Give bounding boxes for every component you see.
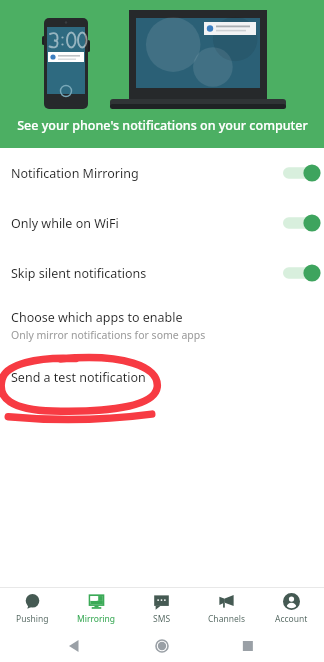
button[interactable]: Notification Mirroring — [0, 148, 324, 198]
button[interactable]: Send a test notification — [0, 354, 324, 400]
button[interactable]: SMS — [129, 588, 194, 630]
staticText: Choose which apps to enable — [11, 309, 183, 326]
staticText: Mirroring — [77, 613, 116, 625]
staticText: Send a test notification — [11, 369, 146, 386]
button[interactable]: Only while on WiFi — [0, 198, 324, 248]
button[interactable]: Channels — [194, 588, 259, 630]
staticText: Only mirror notifications for some apps — [11, 328, 206, 342]
staticText: SMS — [153, 613, 171, 625]
button[interactable]: Choose which apps to enable — [0, 298, 324, 354]
staticText: Only while on WiFi — [11, 215, 283, 232]
button[interactable]: Skip silent notifications — [0, 248, 324, 298]
staticText: Notification Mirroring — [11, 165, 283, 182]
staticText: Pushing — [16, 613, 49, 625]
staticText: Skip silent notifications — [11, 265, 283, 282]
button[interactable]: Account — [259, 588, 324, 630]
staticText: Channels — [208, 613, 245, 625]
button[interactable]: Pushing — [0, 588, 64, 630]
staticText: See your phone's notifications on your c… — [17, 117, 308, 134]
staticText: Account — [275, 613, 308, 625]
button[interactable]: Mirroring — [64, 588, 129, 630]
